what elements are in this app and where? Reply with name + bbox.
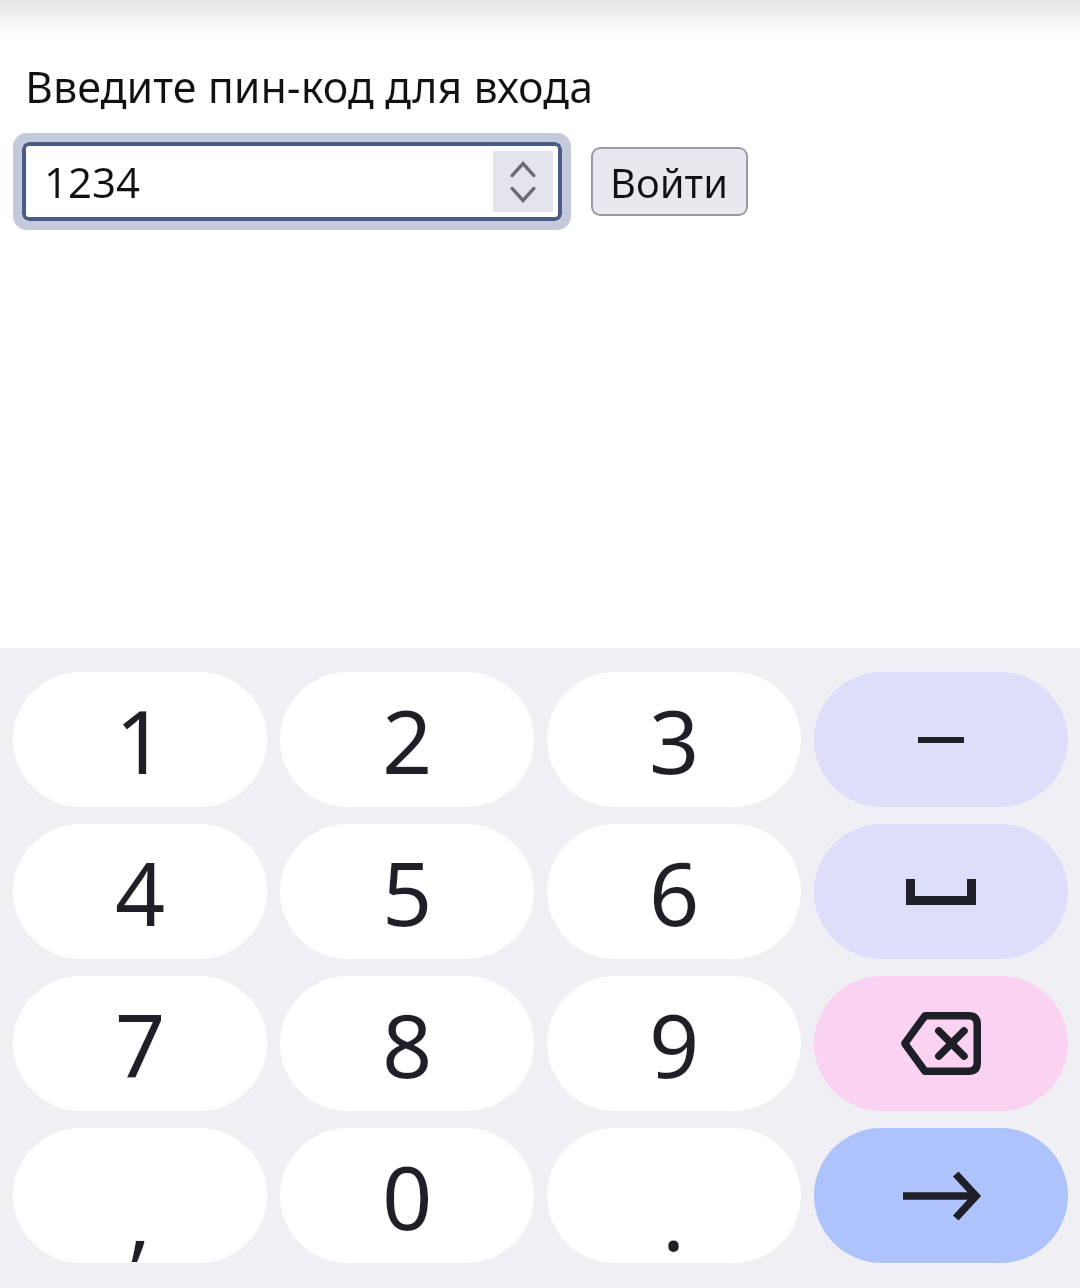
staticText: 5 xyxy=(382,832,433,952)
button[interactable]: 7 xyxy=(13,976,267,1111)
staticText: 0 xyxy=(382,1136,433,1256)
staticText: 4 xyxy=(115,832,166,952)
staticText: Введите пин-код для входа xyxy=(25,57,594,116)
button[interactable]: Space xyxy=(814,824,1068,959)
button[interactable]: 0 xyxy=(280,1128,534,1263)
button[interactable]: 6 xyxy=(547,824,801,959)
button[interactable]: 1234 xyxy=(22,142,562,221)
button[interactable]: 2 xyxy=(280,672,534,807)
button[interactable]: 8 xyxy=(280,976,534,1111)
button[interactable]: Войти xyxy=(591,147,748,216)
button[interactable]: 1 xyxy=(13,672,267,807)
staticText: 7 xyxy=(115,984,166,1104)
button[interactable]: Minus xyxy=(814,672,1068,807)
staticText: 3 xyxy=(649,680,700,800)
staticText: . xyxy=(662,1159,686,1263)
staticText: , xyxy=(128,1159,152,1263)
staticText: 9 xyxy=(649,984,700,1104)
staticText: 8 xyxy=(382,984,433,1104)
staticText: Войти xyxy=(610,155,729,209)
staticText: 1234 xyxy=(44,153,141,210)
staticText: 6 xyxy=(649,832,700,952)
button[interactable]: Stepper xyxy=(493,151,553,212)
staticText: 1 xyxy=(115,680,166,800)
button[interactable]: 5 xyxy=(280,824,534,959)
button[interactable]: , xyxy=(13,1128,267,1263)
button[interactable]: 3 xyxy=(547,672,801,807)
staticText: 2 xyxy=(382,680,433,800)
button[interactable]: 4 xyxy=(13,824,267,959)
button[interactable]: 9 xyxy=(547,976,801,1111)
button[interactable]: . xyxy=(547,1128,801,1263)
button[interactable]: Enter xyxy=(814,1128,1068,1263)
button[interactable]: Backspace xyxy=(814,976,1068,1111)
